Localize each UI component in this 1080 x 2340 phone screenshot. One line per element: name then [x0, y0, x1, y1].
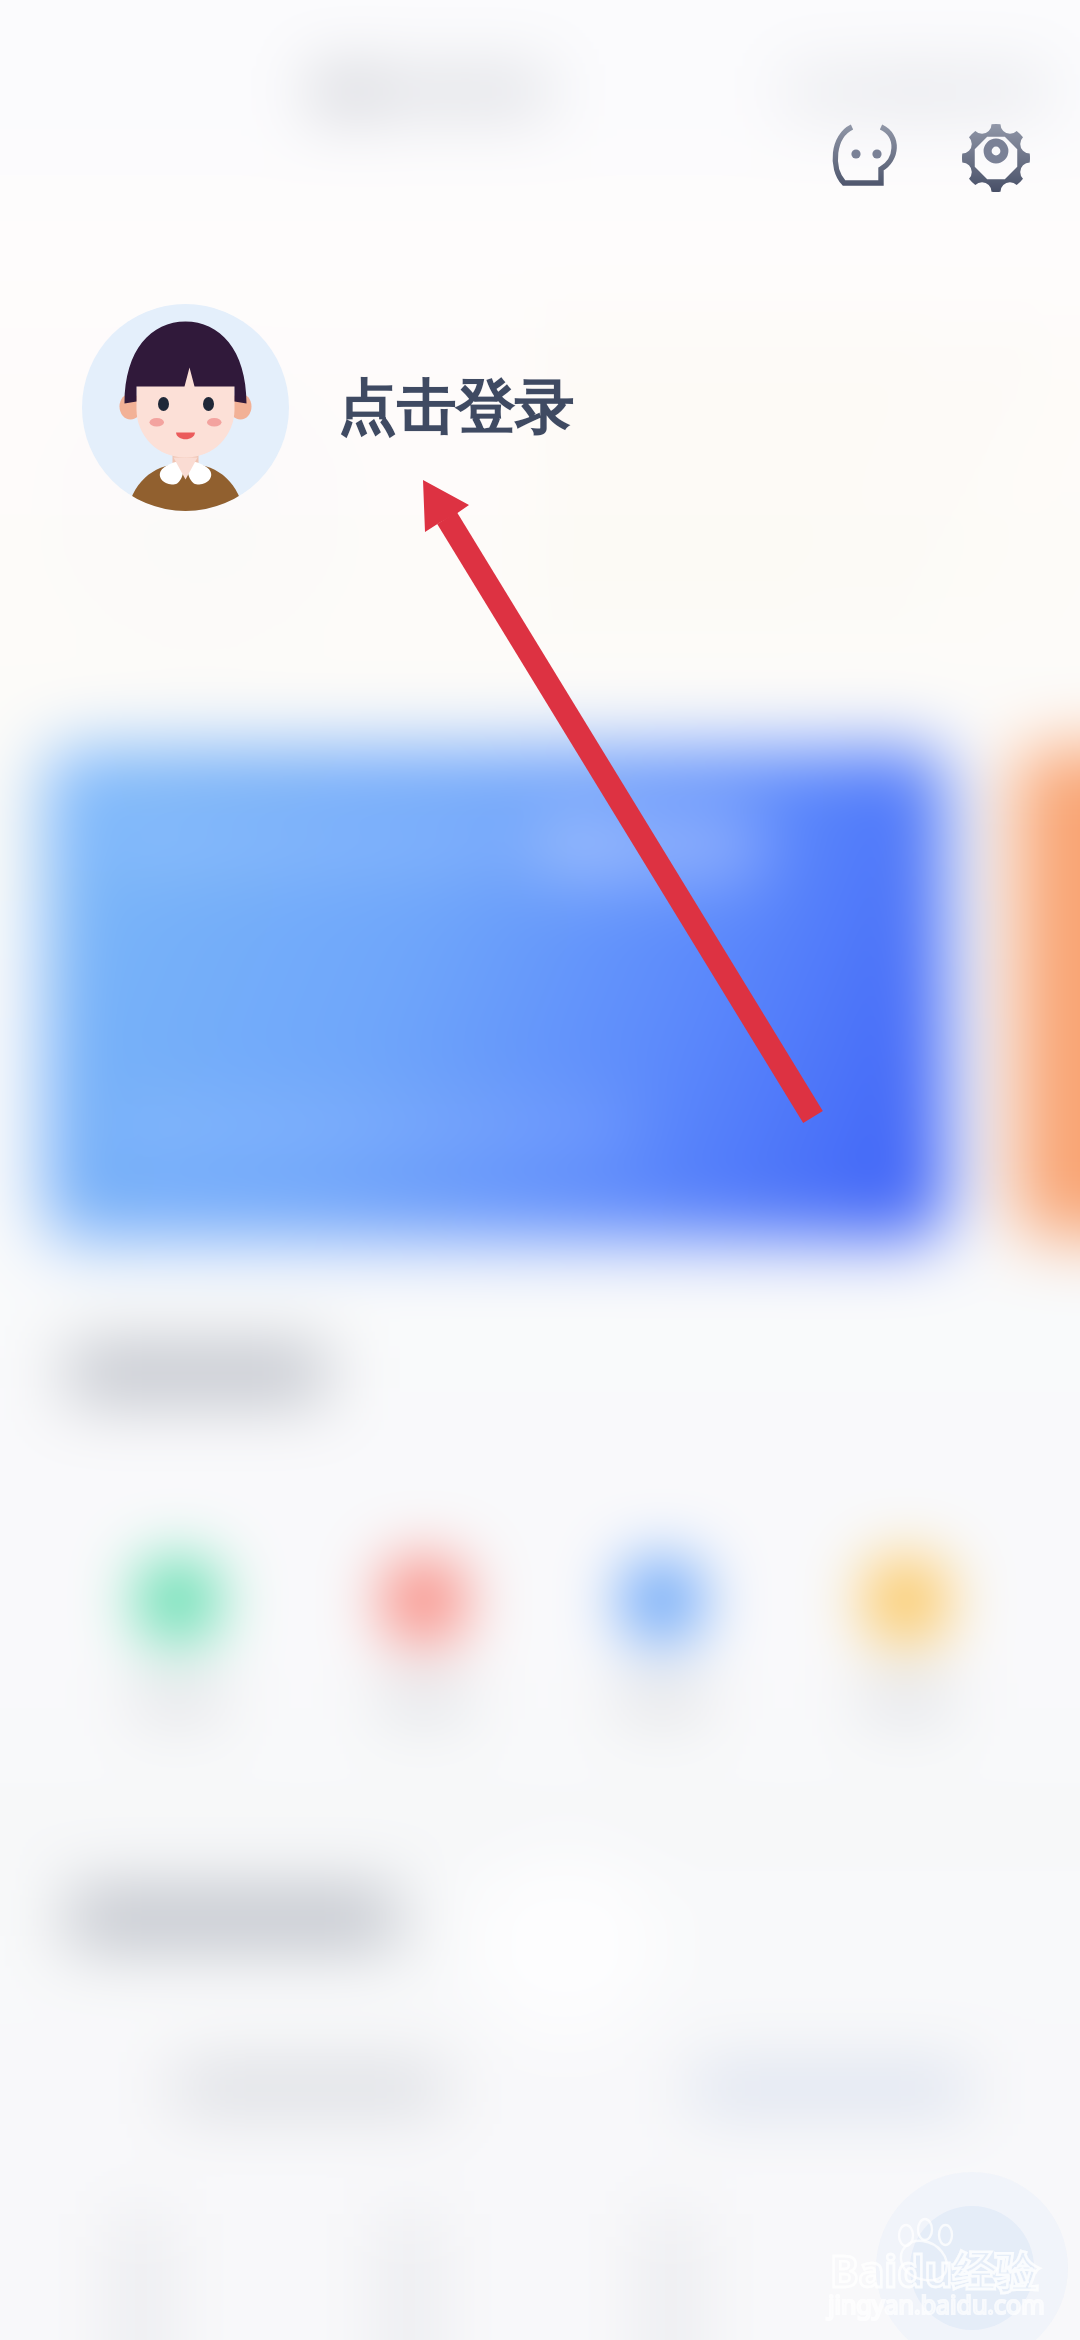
staticText: 点击登录 [337, 371, 573, 445]
button[interactable]: Messages [820, 112, 912, 204]
staticText: Baidu经验 [830, 2241, 1039, 2300]
button[interactable]: Settings [950, 112, 1042, 204]
button[interactable]: 点击登录 [82, 304, 573, 511]
staticText: jingyan.baidu.com [828, 2287, 1045, 2321]
